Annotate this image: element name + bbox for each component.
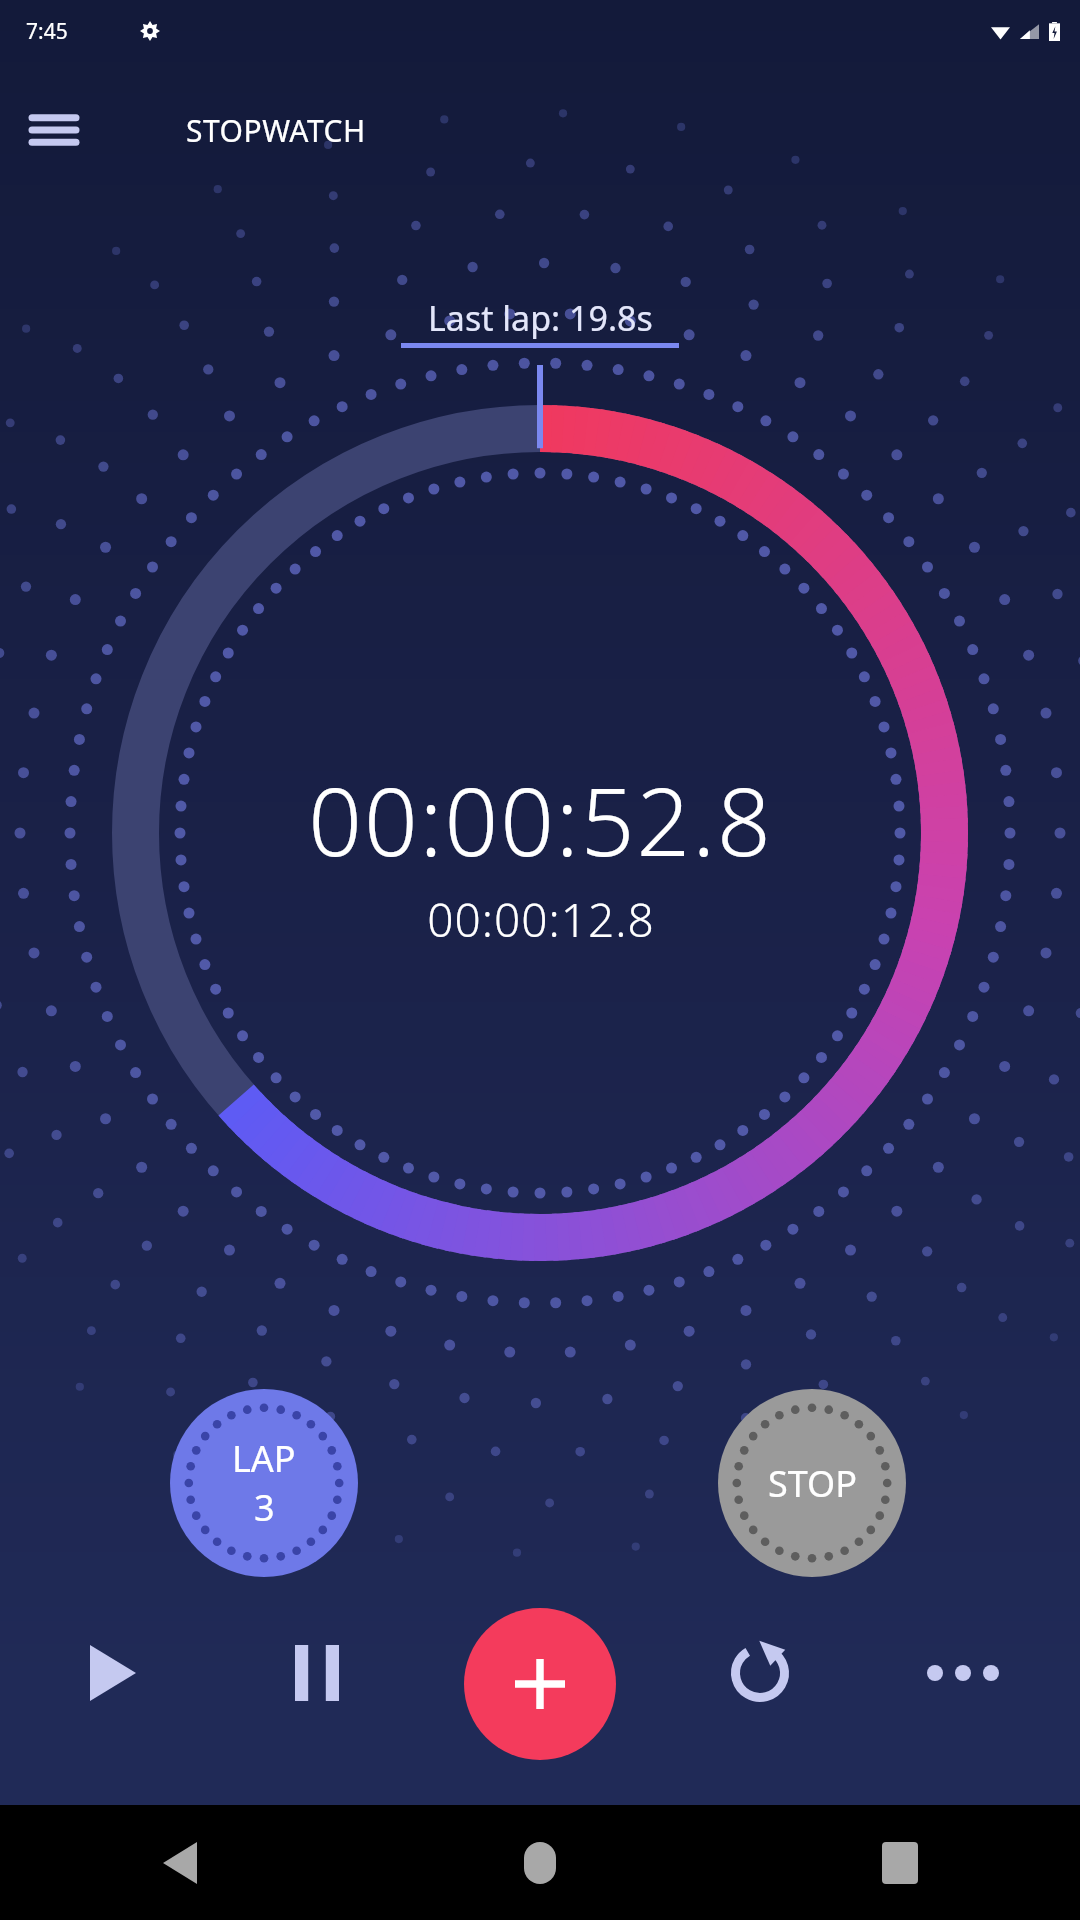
button[interactable]: Pause (262, 1618, 372, 1728)
button[interactable]: Menu (26, 102, 82, 158)
button[interactable]: Home (360, 1805, 720, 1920)
button[interactable]: More options (908, 1618, 1018, 1728)
button[interactable]: Reset (705, 1618, 815, 1728)
button[interactable]: LAP (170, 1389, 358, 1577)
staticText: 00:00:12.8 (427, 888, 655, 951)
staticText: Last lap: 19.8s (428, 295, 653, 341)
button[interactable]: Back (0, 1805, 360, 1920)
button[interactable]: STOP (718, 1389, 906, 1577)
staticText: 00:00:52.8 (308, 756, 773, 884)
staticText: STOPWATCH (186, 110, 366, 151)
staticText: STOP (768, 1459, 857, 1508)
staticText: LAP (232, 1434, 296, 1483)
staticText: 3 (254, 1483, 275, 1532)
button[interactable]: Start (58, 1618, 168, 1728)
staticText: 7:45 (26, 17, 68, 46)
button[interactable]: Recents (720, 1805, 1080, 1920)
button[interactable]: Add lap (464, 1608, 616, 1760)
button[interactable]: Last lap: 19.8s (401, 295, 679, 348)
